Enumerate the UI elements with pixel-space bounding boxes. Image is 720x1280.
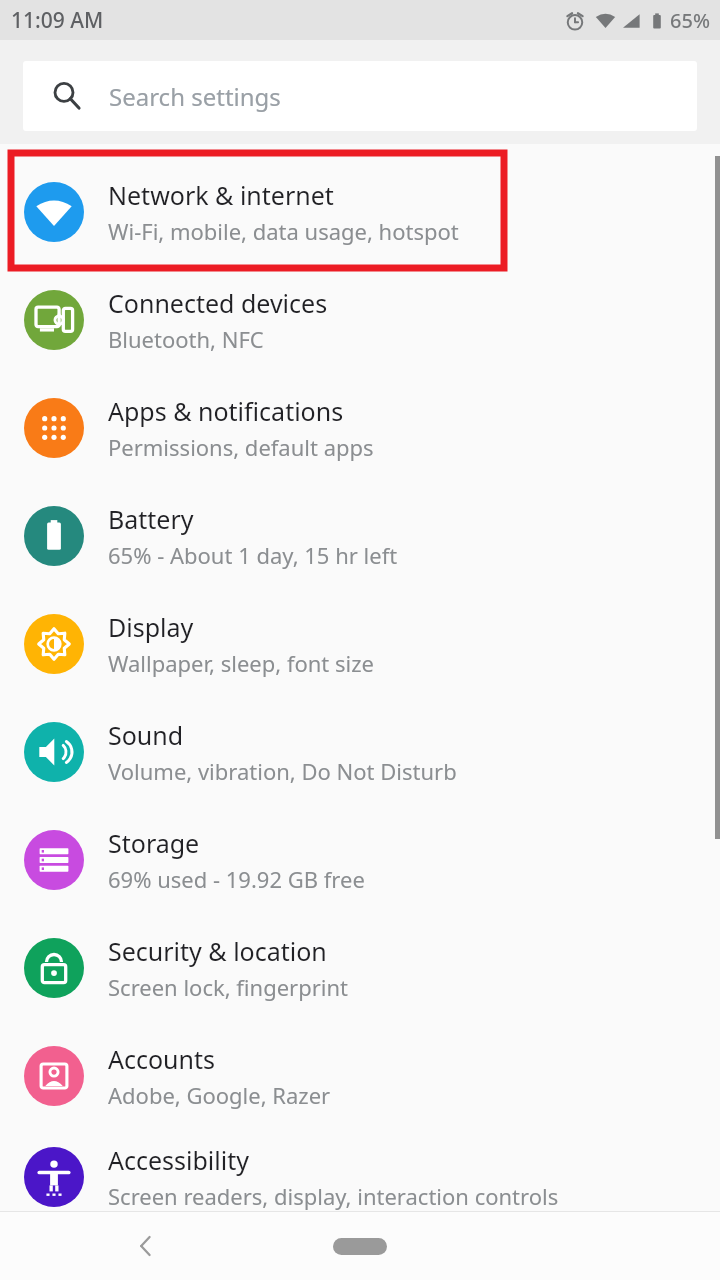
staticText: 65% - About 1 day, 15 hr left (108, 540, 398, 570)
button[interactable]: Display (0, 590, 720, 698)
button[interactable]: Connected devices (0, 266, 720, 374)
staticText: 69% used - 19.92 GB free (108, 864, 365, 894)
staticText: 65% (670, 7, 710, 34)
button[interactable]: Home (325, 1226, 395, 1266)
staticText: Accessibility (108, 1143, 249, 1177)
staticText: Permissions, default apps (108, 432, 374, 462)
button[interactable]: Network & internet (0, 144, 720, 266)
staticText: Adobe, Google, Razer (108, 1080, 331, 1110)
staticText: Bluetooth, NFC (108, 324, 264, 354)
staticText: 11:09 AM (11, 6, 104, 35)
staticText: Connected devices (108, 286, 328, 320)
staticText: Battery (108, 502, 194, 536)
staticText: Display (108, 610, 194, 644)
staticText: Sound (108, 718, 184, 752)
staticText: Wallpaper, sleep, font size (108, 648, 374, 678)
button[interactable]: Back (116, 1216, 176, 1276)
staticText: Apps & notifications (108, 394, 344, 428)
staticText: Wi-Fi, mobile, data usage, hotspot (108, 216, 459, 246)
button[interactable]: Security & location (0, 914, 720, 1022)
other: Search (52, 81, 82, 111)
staticText: Volume, vibration, Do Not Disturb (108, 756, 457, 786)
staticText: Security & location (108, 934, 327, 968)
button[interactable]: Sound (0, 698, 720, 806)
staticText: Storage (108, 826, 200, 860)
staticText: Accounts (108, 1042, 216, 1076)
button[interactable]: Accessibility (0, 1130, 720, 1224)
staticText: Screen readers, display, interaction con… (108, 1181, 559, 1211)
staticText: Search settings (109, 80, 281, 113)
staticText: Screen lock, fingerprint (108, 972, 349, 1002)
button[interactable]: Accounts (0, 1022, 720, 1130)
button[interactable]: Storage (0, 806, 720, 914)
button[interactable]: Search (23, 61, 697, 131)
button[interactable]: Battery (0, 482, 720, 590)
staticText: Network & internet (108, 178, 334, 212)
button[interactable]: Apps & notifications (0, 374, 720, 482)
